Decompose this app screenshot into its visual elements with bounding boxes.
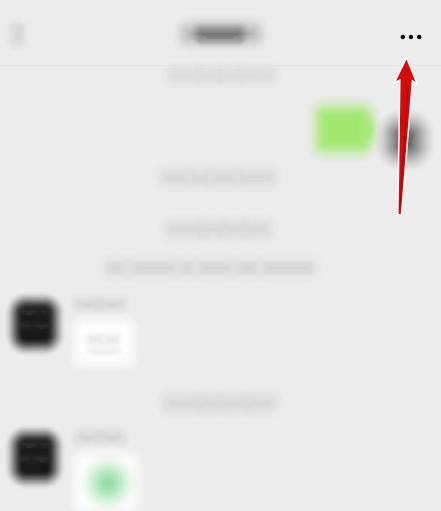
button[interactable]: Back [0,14,42,58]
button[interactable]: More options [389,15,433,59]
button[interactable]: Group info [165,14,305,58]
